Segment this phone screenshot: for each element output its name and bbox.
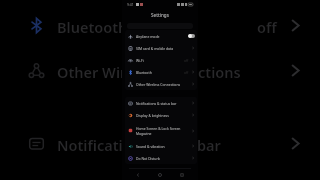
staticText: Home Screen & Lock Screen Magazine bbox=[136, 126, 181, 136]
staticText: Notificati bbox=[57, 135, 123, 155]
staticText: Other Wireless Connections bbox=[136, 82, 181, 87]
button[interactable]: Other Wireless Connections bbox=[125, 78, 197, 90]
staticText: Bluetooth bbox=[57, 17, 128, 37]
button[interactable]: Other Wir bbox=[0, 61, 320, 81]
button[interactable]: Wi-Fi bbox=[125, 54, 197, 66]
button[interactable]: SIM card & mobile data bbox=[125, 42, 197, 54]
button[interactable]: Bluetooth bbox=[125, 66, 197, 78]
button[interactable]: Home Screen & Lock Screen Magazine bbox=[125, 121, 197, 140]
staticText: 9:41 bbox=[127, 2, 134, 7]
button[interactable]: Home bbox=[154, 169, 166, 180]
staticText: Settings bbox=[151, 12, 169, 18]
staticText: ctions bbox=[198, 62, 241, 82]
staticText: Wi-Fi bbox=[136, 58, 144, 63]
staticText: off bbox=[184, 70, 189, 75]
staticText: Display & brightness bbox=[136, 113, 169, 118]
staticText: Do Not Disturb bbox=[136, 156, 160, 161]
button[interactable]: Sound & vibration bbox=[125, 140, 197, 152]
staticText: bar bbox=[197, 135, 221, 155]
staticText: off bbox=[257, 17, 277, 37]
staticText: off bbox=[184, 58, 189, 63]
staticText: Sound & vibration bbox=[136, 144, 165, 149]
staticText: Notifications & status bar bbox=[136, 101, 177, 106]
button[interactable]: Do Not Disturb bbox=[125, 152, 197, 164]
button[interactable]: Display & brightness bbox=[125, 109, 197, 121]
button[interactable]: Airplane mode bbox=[125, 30, 197, 42]
staticText: SIM card & mobile data bbox=[136, 46, 174, 51]
staticText: Airplane mode bbox=[136, 34, 160, 39]
button[interactable]: Notificati bbox=[0, 134, 320, 154]
staticText: Other Wir bbox=[57, 62, 127, 82]
button[interactable]: Notifications & status bar bbox=[125, 97, 197, 109]
button[interactable]: Bluetooth bbox=[0, 16, 320, 36]
button[interactable]: Back bbox=[132, 169, 144, 180]
staticText: Bluetooth bbox=[136, 70, 152, 75]
button[interactable]: Recents bbox=[176, 169, 188, 180]
